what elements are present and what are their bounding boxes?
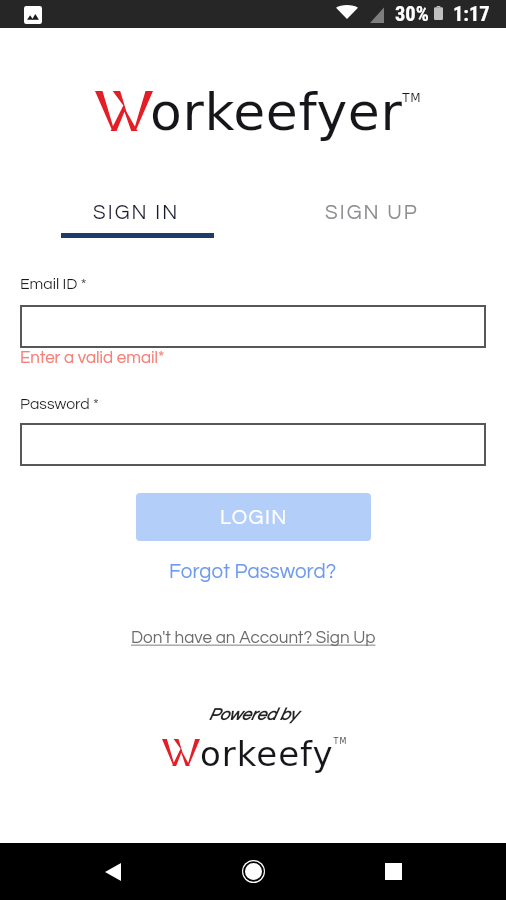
staticText: Enter a valid email*: [20, 349, 165, 367]
staticText: Forgot Password?: [169, 561, 337, 582]
staticText: LOGIN: [220, 507, 288, 528]
staticText: orkeefyTM: [200, 734, 348, 774]
staticText: 1:17: [453, 2, 490, 26]
staticText: 30%: [395, 2, 429, 26]
staticText: SIGN UP: [325, 202, 419, 223]
staticText: Don't have an Account? Sign Up: [131, 629, 376, 647]
button[interactable]: Home: [213, 843, 293, 900]
staticText: Powered by: [208, 706, 298, 724]
button[interactable]: Back: [73, 843, 153, 900]
button[interactable]: SIGN IN: [0, 196, 253, 241]
button[interactable]: [20, 423, 486, 466]
staticText: Email ID *: [20, 276, 87, 292]
staticText: orkeefyerTM: [150, 82, 422, 143]
button[interactable]: SIGN UP: [253, 196, 506, 241]
button[interactable]: [20, 305, 486, 348]
staticText: Password *: [20, 396, 99, 412]
button[interactable]: Forgot Password?: [163, 558, 343, 585]
staticText: SIGN IN: [93, 202, 180, 223]
button[interactable]: Don't have an Account? Sign Up: [125, 626, 382, 650]
button[interactable]: Recent apps: [353, 843, 433, 900]
button[interactable]: LOGIN: [136, 493, 371, 541]
